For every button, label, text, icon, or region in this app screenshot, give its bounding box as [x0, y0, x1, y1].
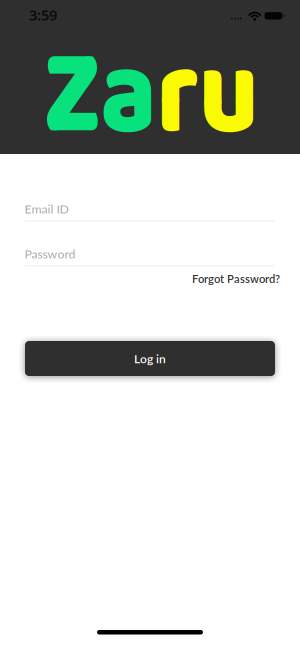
staticText: Password	[24, 246, 75, 261]
staticText: Forgot Password?	[192, 272, 280, 285]
staticText: ru	[157, 0, 278, 194]
staticText: Za	[23, 0, 157, 194]
staticText: Email ID	[24, 201, 68, 216]
staticText: Log in	[134, 351, 166, 366]
staticText: 3:59	[29, 5, 57, 24]
